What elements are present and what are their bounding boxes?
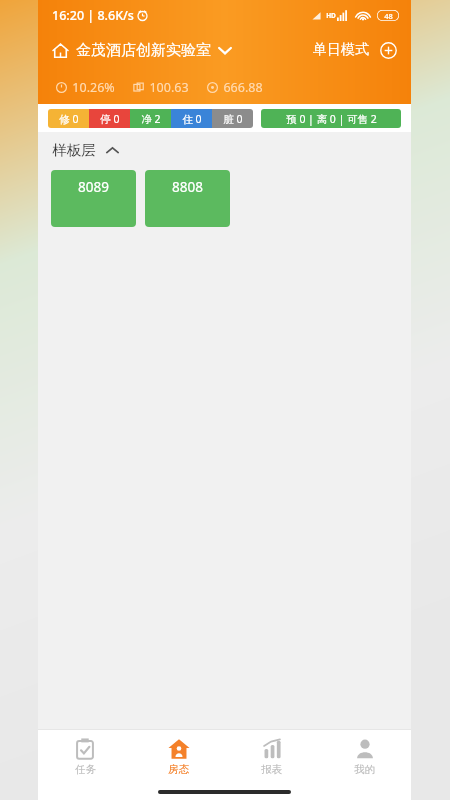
staticText: 8089 — [78, 178, 109, 196]
button[interactable]: 8089 — [51, 170, 136, 227]
staticText: 住 0 — [182, 112, 202, 126]
button[interactable]: 金茂酒店创新实验室 — [52, 37, 232, 64]
button[interactable]: 我的 — [318, 730, 411, 784]
staticText: 报表 — [261, 763, 282, 776]
staticText: 48 — [384, 11, 393, 21]
staticText: 修 0 — [59, 112, 79, 126]
button[interactable]: 报表 — [225, 730, 318, 784]
button[interactable]: 任务 — [38, 730, 132, 784]
button[interactable]: 修 0 — [48, 109, 253, 128]
staticText: 单日模式 — [313, 41, 369, 59]
staticText: 净 2 — [141, 112, 161, 126]
staticText: 16:20 | 8.6K/s — [52, 7, 134, 24]
button[interactable]: 预 0 | 离 0 | 可售 2 — [261, 109, 401, 128]
staticText: 10.26% — [72, 79, 115, 96]
staticText: 样板层 — [52, 141, 96, 159]
button[interactable]: 房态 — [132, 730, 225, 784]
button[interactable]: 样板层 — [52, 132, 411, 168]
staticText: 100.63 — [149, 79, 189, 96]
staticText: 8808 — [172, 178, 203, 196]
staticText: 金茂酒店创新实验室 — [76, 41, 211, 60]
staticText: 停 0 — [100, 112, 120, 126]
staticText: 我的 — [354, 763, 375, 776]
staticText: 任务 — [75, 763, 96, 776]
staticText: 666.88 — [223, 79, 263, 96]
button[interactable]: 8808 — [145, 170, 230, 227]
staticText: 房态 — [168, 763, 189, 776]
button[interactable]: 单日模式 — [313, 37, 369, 63]
staticText: HD — [326, 11, 336, 20]
staticText: 预 0 | 离 0 | 可售 2 — [286, 112, 377, 126]
button[interactable]: Add — [377, 39, 399, 61]
staticText: 脏 0 — [223, 112, 243, 126]
